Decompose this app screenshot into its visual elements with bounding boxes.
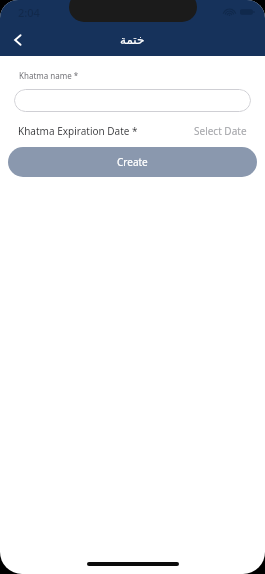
button[interactable]: Back [4,26,32,54]
staticText: Khatma Expiration Date * [18,124,138,138]
button[interactable]: Khatma name input [14,89,251,112]
button[interactable]: Khatma Expiration Date * [0,120,265,142]
staticText: Create [117,155,148,169]
staticText: Khatma name * [19,70,79,81]
staticText: ختمة [120,33,145,47]
button[interactable]: Create [8,147,257,177]
staticText: 2:04 [18,5,40,20]
staticText: Select Date [194,124,247,138]
